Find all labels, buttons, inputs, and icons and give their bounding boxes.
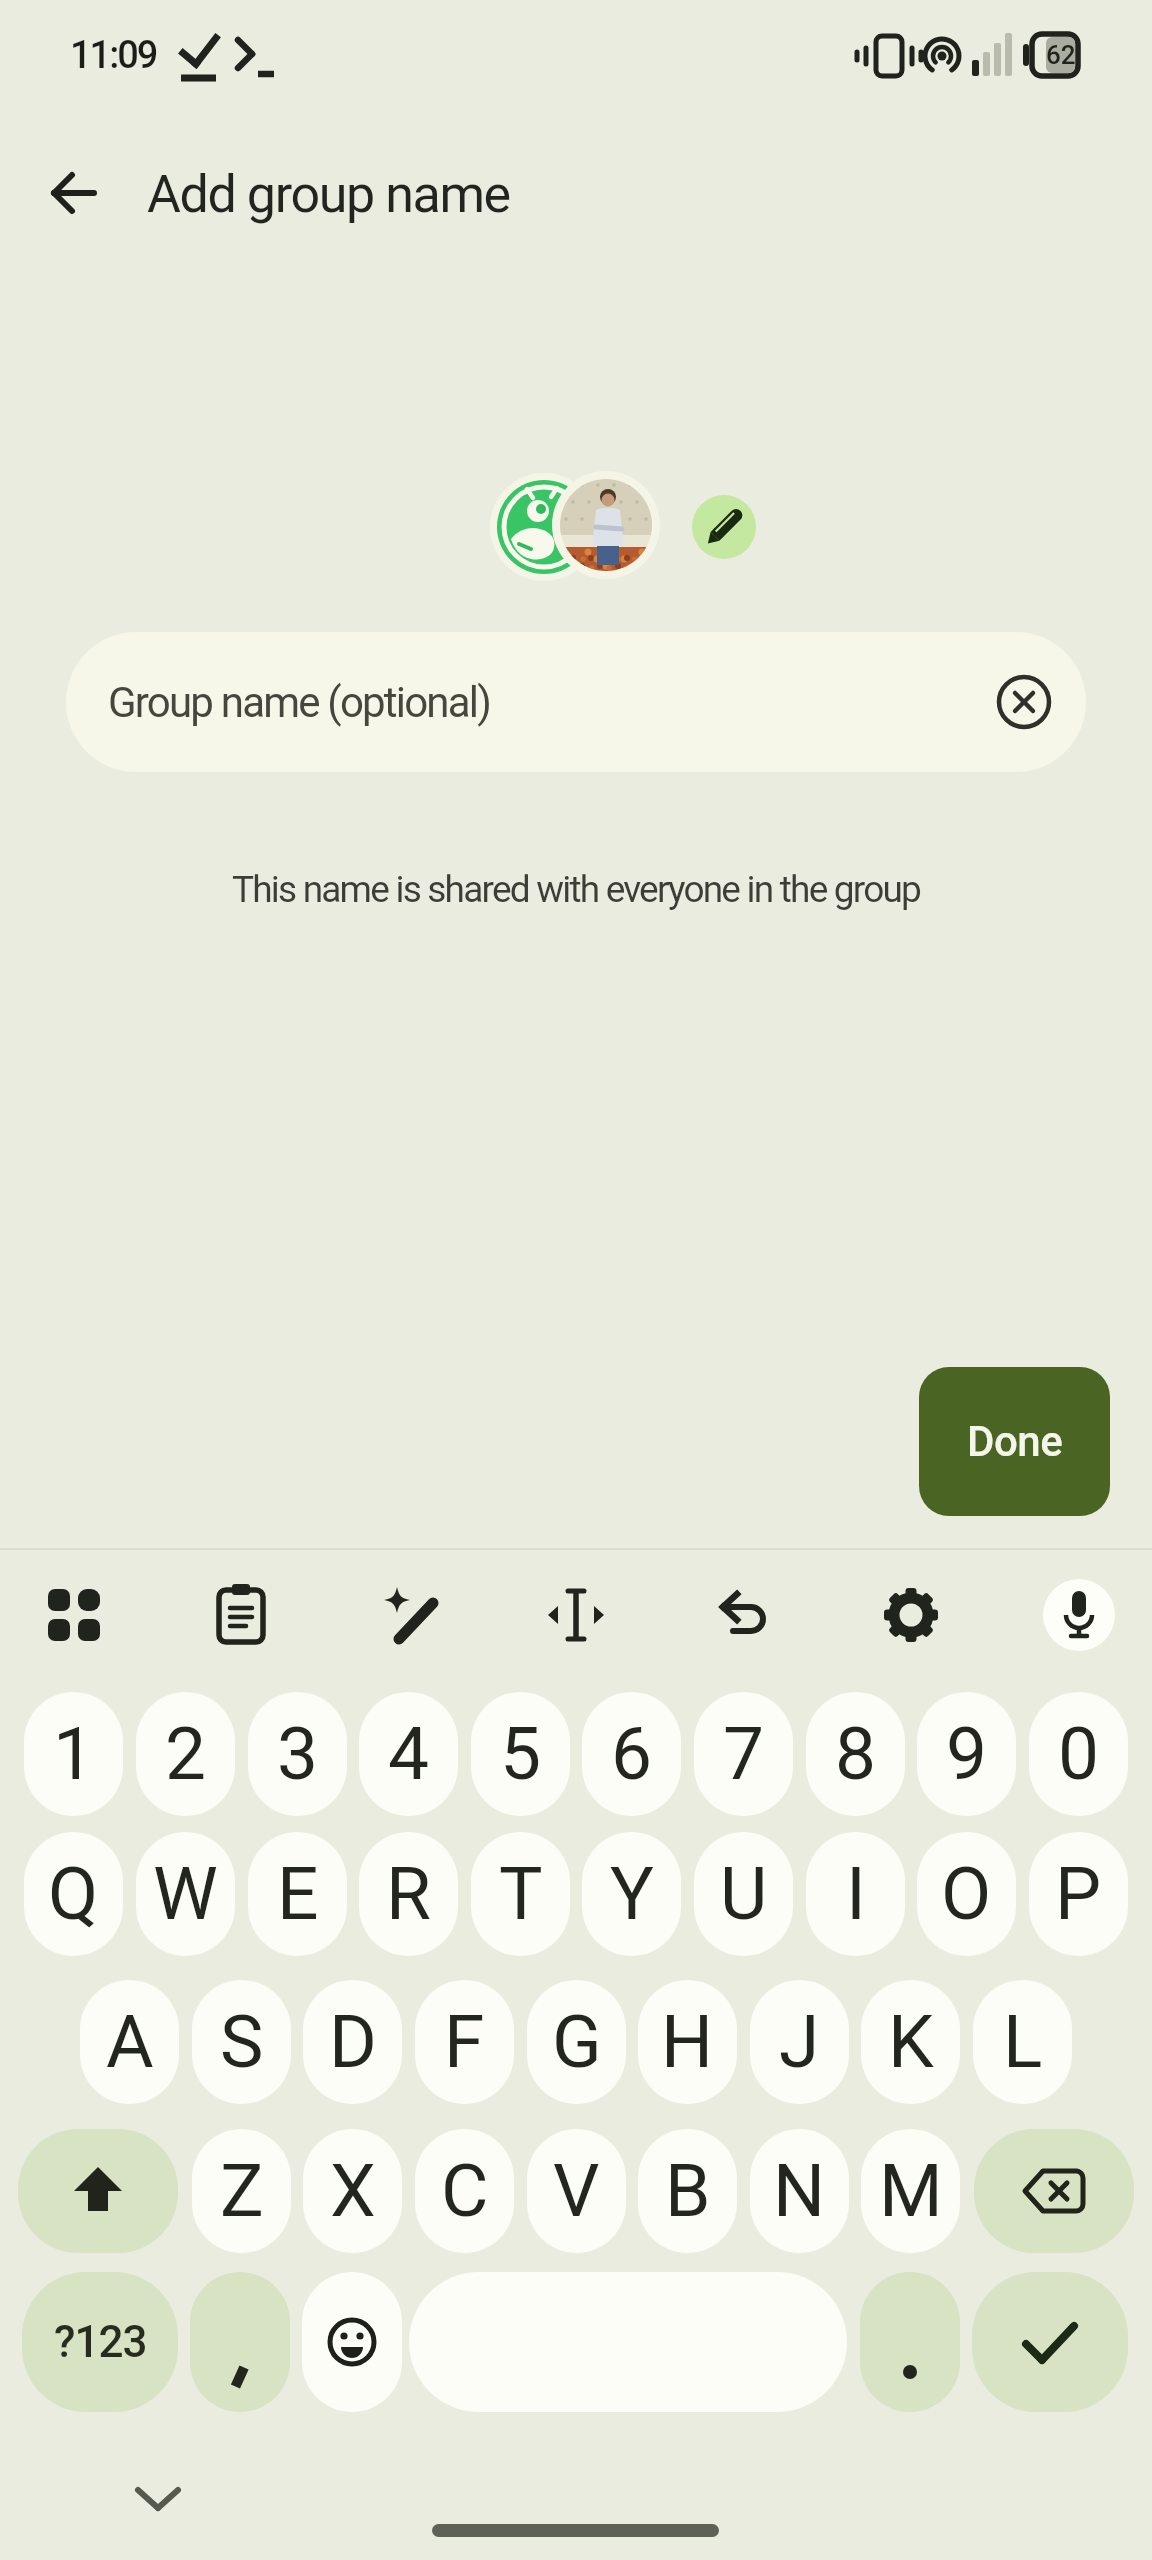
button[interactable]: C (415, 2129, 514, 2253)
button[interactable]: P (1029, 1832, 1128, 1956)
staticText: 6 (611, 1711, 653, 1797)
button[interactable]: X (303, 2129, 402, 2253)
button[interactable]: 8 (806, 1692, 905, 1816)
button[interactable]: T (471, 1832, 570, 1956)
button[interactable]: W (136, 1832, 235, 1956)
staticText: 0 (1058, 1711, 1100, 1797)
staticText: F (444, 1999, 485, 2085)
staticText: K (888, 1999, 934, 2085)
staticText: 1 (53, 1711, 95, 1797)
button[interactable] (0, 1560, 164, 1670)
button[interactable] (329, 1560, 493, 1670)
staticText: Q (48, 1851, 99, 1937)
button[interactable]: Done (919, 1367, 1110, 1516)
staticText: This name is shared with everyone in the… (0, 868, 1152, 911)
staticText: G (552, 1999, 602, 2085)
staticText: L (1003, 1999, 1043, 2085)
button[interactable] (987, 1560, 1151, 1670)
button[interactable]: 9 (917, 1692, 1016, 1816)
staticText: P (1055, 1851, 1102, 1937)
button[interactable] (823, 1560, 987, 1670)
staticText: O (941, 1851, 992, 1937)
button[interactable] (409, 2272, 847, 2412)
button[interactable] (118, 2470, 198, 2530)
button[interactable]: Group name (optional) (66, 632, 1086, 772)
staticText: T (499, 1851, 543, 1937)
button[interactable]: E (248, 1832, 347, 1956)
button[interactable] (18, 2129, 178, 2253)
button[interactable]: N (750, 2129, 849, 2253)
button[interactable] (972, 2272, 1128, 2412)
button[interactable]: Z (192, 2129, 291, 2253)
staticText: S (220, 1999, 264, 2085)
staticText: J (779, 1999, 820, 2085)
staticText: A (106, 1999, 154, 2085)
button[interactable]: 5 (471, 1692, 570, 1816)
button[interactable]: J (750, 1980, 849, 2104)
staticText: Z (220, 2148, 264, 2234)
staticText: N (773, 2148, 826, 2234)
staticText: X (330, 2148, 376, 2234)
button[interactable]: 0 (1029, 1692, 1128, 1816)
button[interactable]: Y (582, 1832, 681, 1956)
button[interactable]: G (527, 1980, 626, 2104)
staticText: H (661, 1999, 714, 2085)
button[interactable] (996, 674, 1052, 730)
staticText: M (879, 2148, 943, 2234)
button[interactable] (860, 2272, 960, 2412)
button[interactable]: 4 (359, 1692, 458, 1816)
button[interactable]: F (415, 1980, 514, 2104)
button[interactable]: I (806, 1832, 905, 1956)
button[interactable]: 2 (136, 1692, 235, 1816)
button[interactable] (190, 2272, 290, 2412)
staticText: Group name (optional) (108, 678, 490, 727)
staticText: 62 (1046, 40, 1076, 70)
staticText: 7 (723, 1711, 765, 1797)
button[interactable]: A (80, 1980, 179, 2104)
button[interactable]: 3 (248, 1692, 347, 1816)
button[interactable]: L (973, 1980, 1072, 2104)
button[interactable] (658, 1560, 822, 1670)
button[interactable]: U (694, 1832, 793, 1956)
button[interactable]: 1 (24, 1692, 123, 1816)
staticText: C (441, 2148, 489, 2234)
button[interactable]: B (638, 2129, 737, 2253)
staticText: U (720, 1851, 768, 1937)
button[interactable]: D (303, 1980, 402, 2104)
button[interactable] (40, 163, 108, 223)
button[interactable]: S (192, 1980, 291, 2104)
button[interactable]: 6 (582, 1692, 681, 1816)
staticText: 8 (835, 1711, 877, 1797)
button[interactable] (165, 1560, 329, 1670)
staticText: Add group name (147, 164, 510, 225)
button[interactable]: O (917, 1832, 1016, 1956)
staticText: W (153, 1851, 218, 1937)
staticText: D (329, 1999, 377, 2085)
button[interactable] (302, 2272, 402, 2412)
staticText: V (553, 2148, 600, 2234)
button[interactable]: Q (24, 1832, 123, 1956)
staticText: I (846, 1851, 866, 1937)
staticText: R (386, 1851, 431, 1937)
staticText: ?123 (54, 2316, 147, 2368)
staticText: 4 (388, 1711, 430, 1797)
button[interactable] (485, 466, 665, 588)
staticText: 2 (165, 1711, 207, 1797)
staticText: 3 (277, 1711, 319, 1797)
staticText: 9 (946, 1711, 988, 1797)
staticText: Done (967, 1417, 1063, 1466)
staticText: 11:09 (70, 33, 157, 78)
button[interactable]: M (861, 2129, 960, 2253)
button[interactable]: 7 (694, 1692, 793, 1816)
staticText: E (277, 1851, 319, 1937)
staticText: Y (610, 1851, 654, 1937)
button[interactable] (494, 1560, 658, 1670)
button[interactable]: V (527, 2129, 626, 2253)
button[interactable] (692, 495, 756, 559)
staticText: 5 (500, 1711, 542, 1797)
button[interactable]: H (638, 1980, 737, 2104)
button[interactable]: ?123 (22, 2272, 178, 2412)
button[interactable] (974, 2129, 1134, 2253)
button[interactable]: K (861, 1980, 960, 2104)
button[interactable]: R (359, 1832, 458, 1956)
